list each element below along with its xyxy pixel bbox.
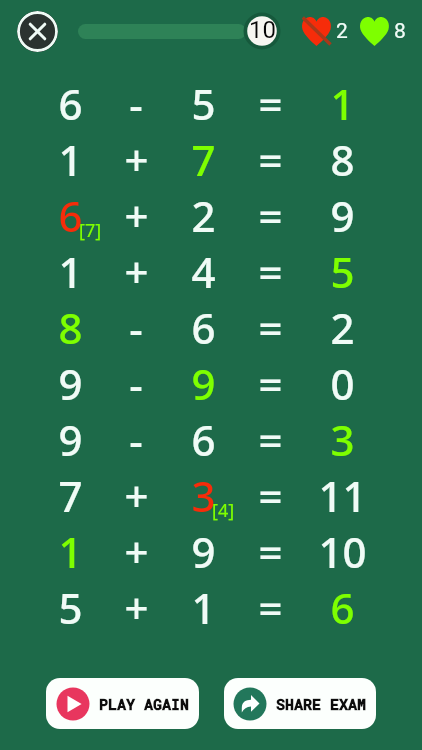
staticText: 5 [58, 579, 83, 635]
staticText: = [258, 187, 283, 243]
staticText: 0 [330, 355, 355, 411]
staticText: + [124, 243, 149, 299]
staticText: 1 [58, 131, 83, 187]
staticText: 10 [318, 523, 367, 579]
staticText: = [258, 523, 283, 579]
staticText: = [258, 75, 283, 131]
staticText: 2 [336, 19, 348, 44]
staticText: 9 [58, 411, 83, 467]
staticText: = [258, 299, 283, 355]
staticText: 6 [330, 579, 355, 635]
staticText: + [124, 131, 149, 187]
staticText: 9 [191, 523, 216, 579]
staticText: 9 [330, 187, 355, 243]
staticText: + [124, 579, 149, 635]
staticText: 7 [191, 131, 216, 187]
staticText: + [124, 187, 149, 243]
staticText: 2 [191, 187, 216, 243]
staticText: - [129, 299, 143, 355]
staticText: 1 [58, 243, 83, 299]
staticText: = [258, 467, 283, 523]
other: Wrong answers [302, 17, 331, 46]
staticText: 3 [191, 467, 216, 523]
staticText: 10 [249, 16, 276, 44]
button[interactable]: Close [17, 11, 58, 52]
staticText: 11 [318, 467, 367, 523]
staticText: 8 [394, 19, 406, 44]
staticText: = [258, 243, 283, 299]
staticText: 7 [58, 467, 83, 523]
staticText: = [258, 131, 283, 187]
button[interactable]: PLAY AGAIN [46, 678, 199, 729]
staticText: - [129, 411, 143, 467]
staticText: 1 [330, 75, 355, 131]
other: Correct answers [360, 17, 389, 46]
staticText: SHARE EXAM [276, 694, 367, 714]
staticText: [7] [79, 218, 102, 243]
staticText: = [258, 411, 283, 467]
staticText: 9 [191, 355, 216, 411]
staticText: + [124, 523, 149, 579]
staticText: 6 [58, 75, 83, 131]
staticText: - [129, 75, 143, 131]
staticText: 8 [330, 131, 355, 187]
staticText: - [129, 355, 143, 411]
staticText: 5 [330, 243, 355, 299]
button[interactable]: SHARE EXAM [224, 678, 376, 729]
staticText: 6 [58, 187, 83, 243]
staticText: 6 [191, 411, 216, 467]
staticText: 6 [191, 299, 216, 355]
staticText: [4] [212, 498, 235, 523]
staticText: 5 [191, 75, 216, 131]
staticText: = [258, 355, 283, 411]
staticText: + [124, 467, 149, 523]
staticText: 1 [58, 523, 83, 579]
staticText: PLAY AGAIN [99, 694, 190, 714]
staticText: 4 [191, 243, 216, 299]
staticText: 9 [58, 355, 83, 411]
staticText: 2 [330, 299, 355, 355]
staticText: 8 [58, 299, 83, 355]
staticText: = [258, 579, 283, 635]
staticText: 1 [191, 579, 216, 635]
staticText: 3 [330, 411, 355, 467]
